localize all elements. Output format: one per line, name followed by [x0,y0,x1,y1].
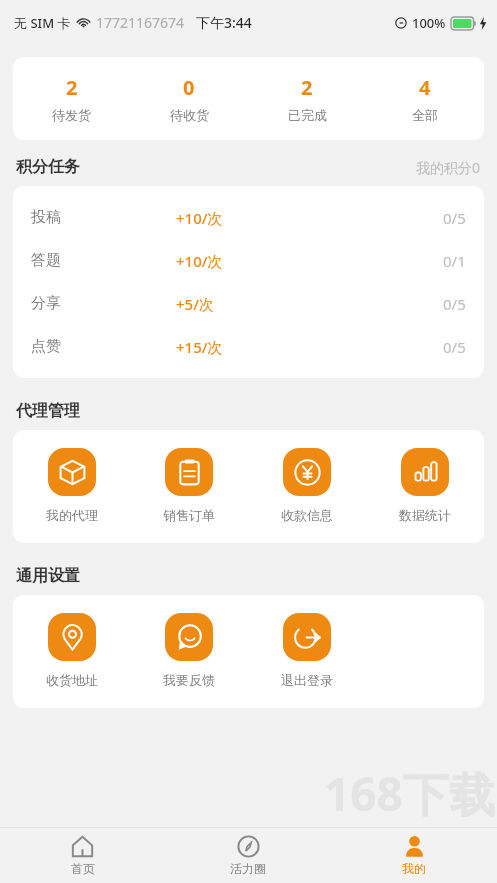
staticText: 我的积分0 [416,158,481,177]
staticText: 退出登录 [281,672,333,688]
staticText: 答题 [31,251,61,270]
staticText: 2 [301,74,313,101]
button[interactable]: 我的 [331,828,497,883]
button[interactable]: 收款信息 [248,448,366,523]
button[interactable]: 2 [248,72,366,125]
button[interactable]: 退出登录 [248,613,366,688]
staticText: 4 [419,74,431,101]
staticText: 收货地址 [46,672,98,688]
button[interactable]: 点赞 [13,325,484,368]
staticText: 100% [412,14,446,32]
button[interactable]: 销售订单 [130,448,248,523]
button[interactable]: 我的代理 [13,448,130,523]
button[interactable]: 首页 [0,828,165,883]
staticText: 收款信息 [281,507,333,523]
staticText: 0 [183,74,195,101]
button[interactable]: 我要反馈 [130,613,248,688]
staticText: 首页 [71,861,95,876]
staticText: 无 SIM 卡 [14,14,71,32]
button[interactable]: 4 [366,72,484,125]
button[interactable]: 0 [130,72,248,125]
staticText: 我的 [402,861,426,876]
staticText: 全部 [412,107,438,123]
staticText: 投稿 [31,208,61,227]
button[interactable]: 活力圈 [165,828,331,883]
staticText: 2 [66,74,78,101]
button[interactable]: 收货地址 [13,613,130,688]
staticText: 0/1 [443,251,466,271]
button[interactable]: 分享 [13,282,484,325]
staticText: 点赞 [31,337,61,356]
staticText: 活力圈 [230,861,266,876]
button[interactable]: 投稿 [13,196,484,239]
staticText: 积分任务 [16,157,80,177]
button[interactable]: 2 [13,72,130,125]
button[interactable]: 答题 [13,239,484,282]
staticText: 销售订单 [163,507,215,523]
staticText: 我要反馈 [163,672,215,688]
staticText: 代理管理 [16,401,80,421]
staticText: 分享 [31,294,61,313]
staticText: 通用设置 [16,566,80,586]
staticText: 下午3:44 [196,13,252,32]
staticText: +10/次 [176,208,223,228]
staticText: 0/5 [443,208,466,228]
staticText: 待收货 [170,107,209,123]
staticText: 我的代理 [46,507,98,523]
staticText: +15/次 [176,337,223,357]
staticText: 数据统计 [399,507,451,523]
button[interactable]: 数据统计 [366,448,484,523]
staticText: 0/5 [443,294,466,314]
staticText: 168下载 [324,762,495,825]
staticText: 已完成 [288,107,327,123]
staticText: +10/次 [176,251,223,271]
staticText: 待发货 [52,107,91,123]
staticText: 0/5 [443,337,466,357]
staticText: +5/次 [176,294,214,314]
staticText: 17721167674 [96,13,185,32]
